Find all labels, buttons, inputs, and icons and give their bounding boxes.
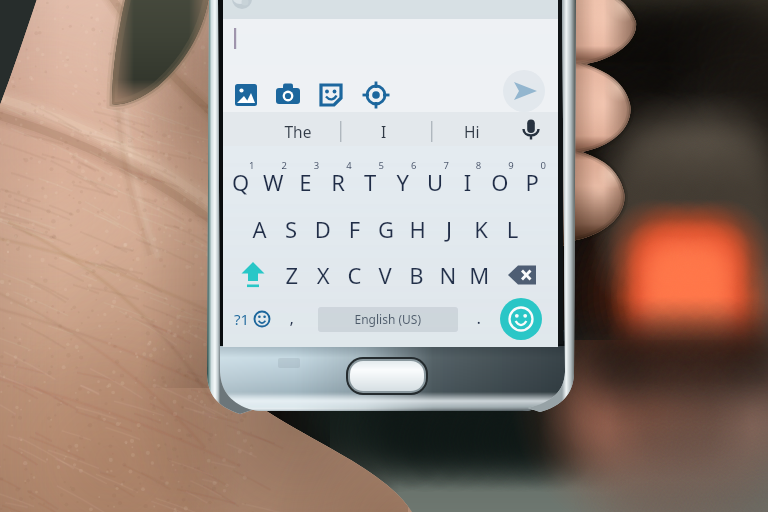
button[interactable]: L <box>496 198 528 242</box>
button[interactable]: E <box>289 152 321 196</box>
button[interactable]: Voice input <box>511 114 551 144</box>
button[interactable]: W <box>257 152 289 196</box>
button[interactable]: K <box>465 198 497 242</box>
button[interactable]: C <box>338 252 370 296</box>
button[interactable]: Shift <box>235 252 273 296</box>
button[interactable]: G <box>370 198 402 242</box>
button[interactable]: I <box>451 152 483 196</box>
button[interactable]: M <box>463 252 495 296</box>
button[interactable]: Emoji <box>500 298 544 342</box>
button[interactable]: Home <box>350 361 424 391</box>
button[interactable]: N <box>432 252 464 296</box>
button[interactable]: I <box>349 114 421 144</box>
button[interactable]: R <box>322 152 354 196</box>
button[interactable]: J <box>433 198 465 242</box>
button[interactable]: S <box>275 198 307 242</box>
button[interactable]: Take photo <box>270 78 306 114</box>
button[interactable]: Share location <box>358 78 394 114</box>
button[interactable]: Stickers <box>313 78 349 114</box>
button[interactable]: A <box>244 198 276 242</box>
button[interactable]: Insert picture <box>228 78 264 114</box>
button[interactable]: The <box>263 114 335 144</box>
button[interactable]: Backspace <box>505 252 543 296</box>
button[interactable]: Hi <box>437 114 509 144</box>
button[interactable]: Q <box>225 152 257 196</box>
button[interactable]: V <box>369 252 401 296</box>
button[interactable]: O <box>484 152 516 196</box>
button[interactable]: F <box>338 198 370 242</box>
button[interactable]: X <box>307 252 339 296</box>
button[interactable]: Symbols <box>229 300 275 340</box>
button[interactable]: Send message <box>503 74 545 116</box>
button[interactable]: U <box>419 152 451 196</box>
button[interactable]: B <box>400 252 432 296</box>
button[interactable]: D <box>307 198 339 242</box>
button[interactable]: P <box>516 152 548 196</box>
button[interactable]: Comma <box>279 300 307 340</box>
button[interactable]: T <box>354 152 386 196</box>
button[interactable]: Z <box>276 252 308 296</box>
button[interactable]: Period <box>466 300 494 340</box>
button[interactable]: English (US) <box>318 303 458 335</box>
button[interactable]: Message input <box>223 19 558 65</box>
button[interactable]: Y <box>387 152 419 196</box>
button[interactable]: H <box>402 198 434 242</box>
